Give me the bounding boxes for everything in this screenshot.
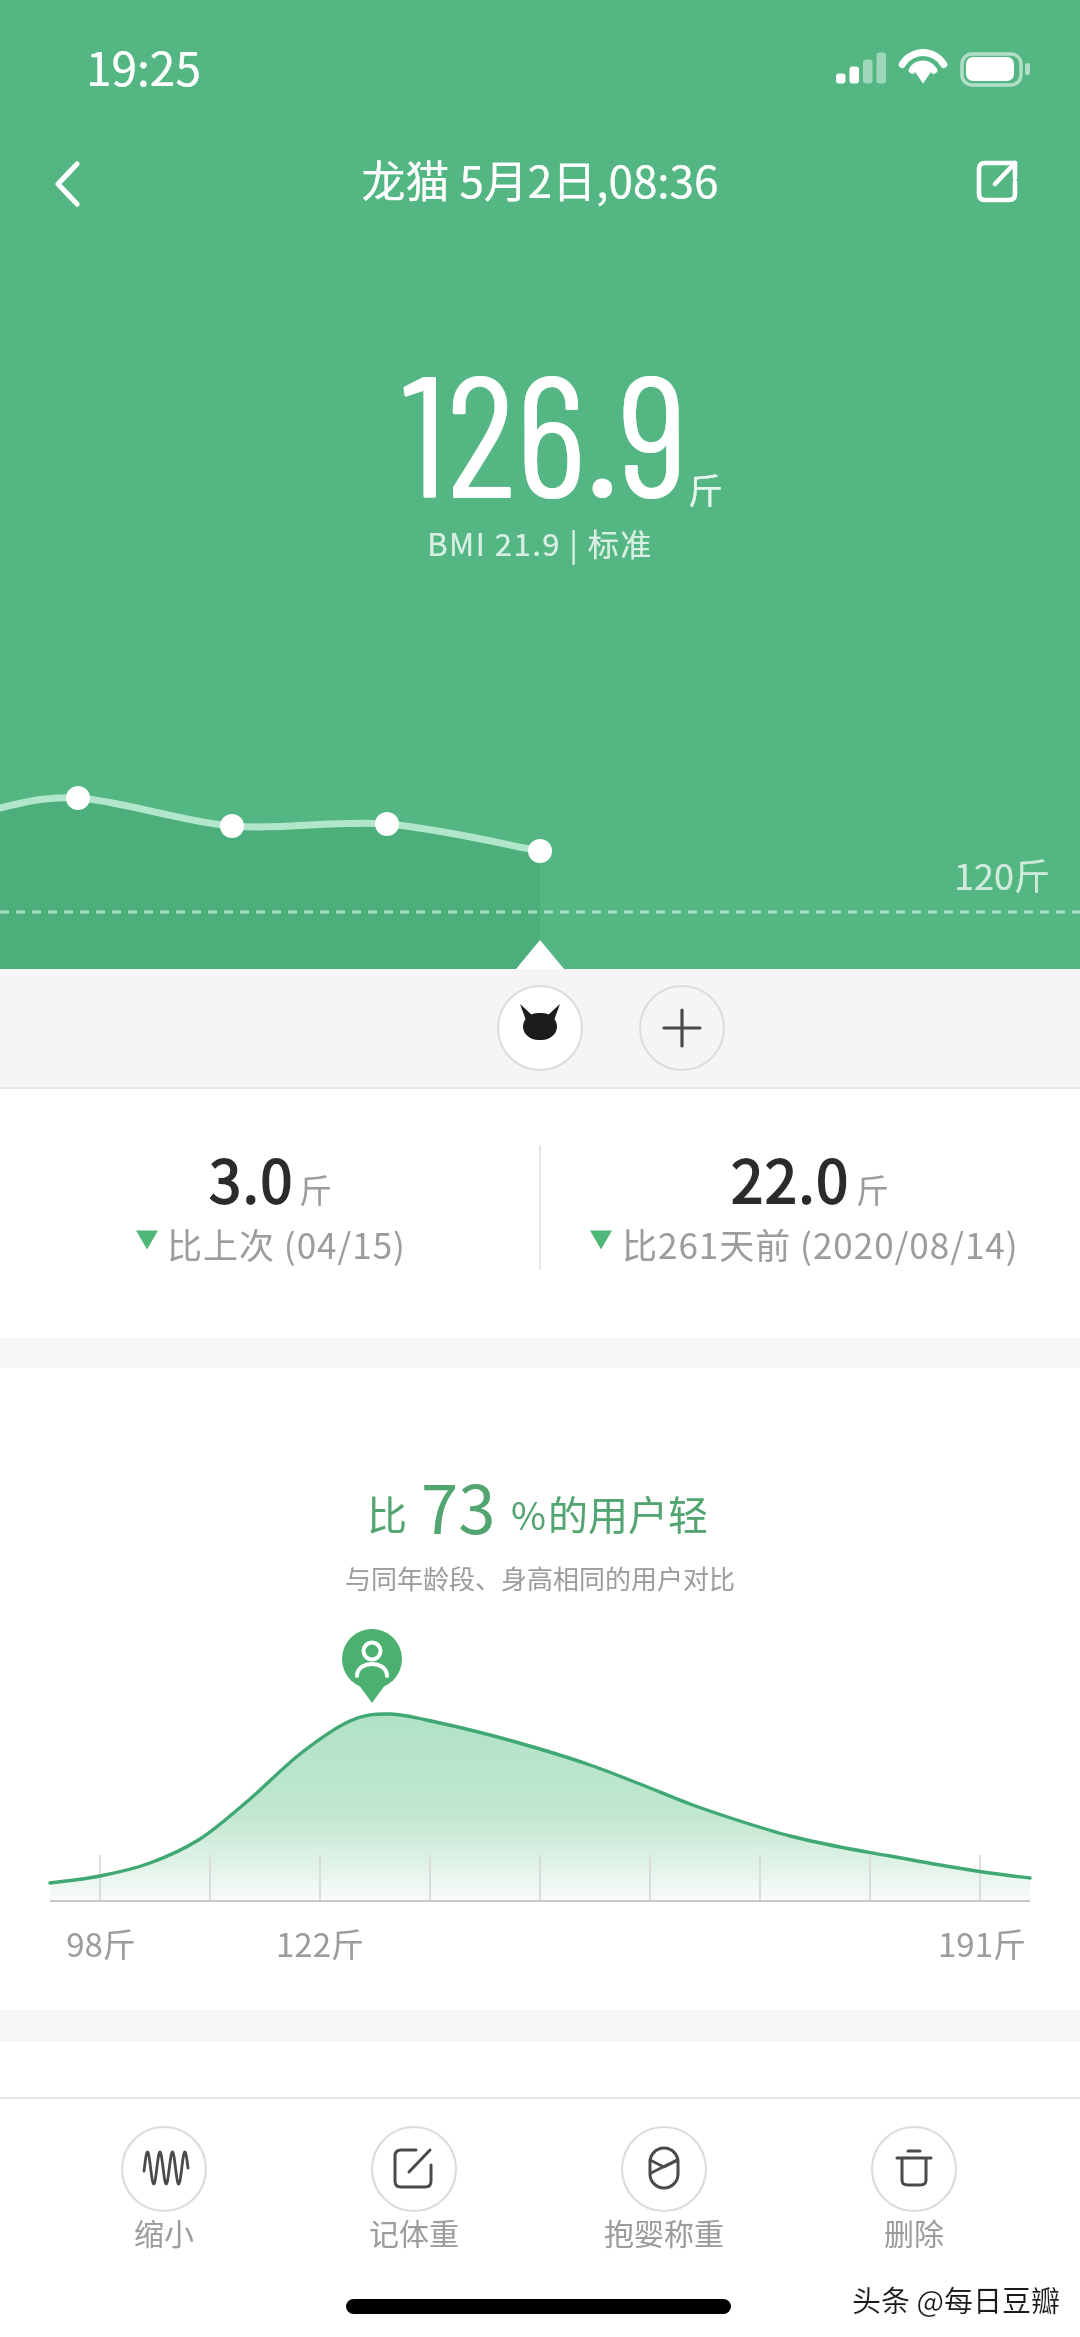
staticText: 98斤: [1, 1919, 201, 1967]
staticText: %: [511, 1486, 546, 1541]
staticText: 斤: [856, 1165, 889, 1213]
button[interactable]: 缩小: [102, 2126, 226, 2276]
staticText: 缩小: [102, 2210, 226, 2253]
staticText: 比上次 (04/15): [167, 1218, 406, 1269]
staticText: 与同年龄段、身高相同的用户对比: [0, 1559, 1080, 1597]
staticText: 73: [421, 1456, 496, 1553]
button[interactable]: Current member: [497, 985, 583, 1071]
button[interactable]: 记体重: [352, 2126, 476, 2276]
staticText: 19:25: [86, 33, 201, 100]
button[interactable]: 抱婴称重: [602, 2126, 726, 2276]
staticText: 斤: [688, 463, 724, 514]
staticText: 191斤: [884, 1919, 1080, 1967]
button[interactable]: Share: [957, 141, 1037, 221]
staticText: 的用户轻: [548, 1484, 708, 1542]
staticText: 122斤: [220, 1919, 420, 1967]
staticText: 比261天前 (2020/08/14): [622, 1218, 1019, 1269]
staticText: 抱婴称重: [602, 2210, 726, 2253]
staticText: 126.9: [5, 326, 1080, 532]
staticText: 头条 @每日豆瓣: [830, 2278, 1060, 2320]
staticText: 删除: [852, 2210, 976, 2253]
staticText: 比: [367, 1484, 407, 1542]
staticText: 120斤: [850, 848, 1050, 900]
staticText: BMI 21.9 | 标准: [0, 520, 1080, 565]
button[interactable]: 删除: [852, 2126, 976, 2276]
staticText: 3.0: [209, 1136, 295, 1220]
button[interactable]: Add member: [639, 985, 725, 1071]
staticText: 龙猫 5月2日,08:36: [0, 147, 1080, 211]
staticText: 斤: [299, 1165, 332, 1213]
staticText: 22.0: [731, 1136, 850, 1220]
button[interactable]: Back: [18, 145, 98, 225]
staticText: 记体重: [352, 2210, 476, 2253]
